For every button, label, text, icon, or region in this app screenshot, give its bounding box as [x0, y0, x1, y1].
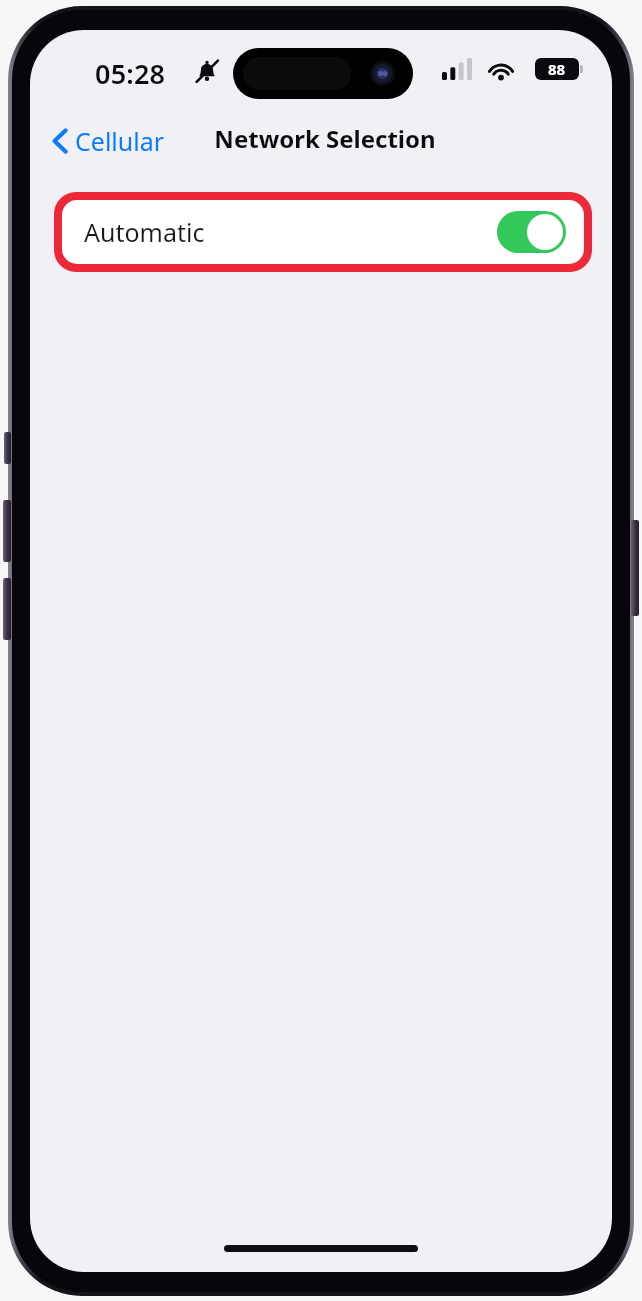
staticText: Network Selection: [214, 122, 436, 155]
staticText: 05:28: [95, 55, 166, 92]
staticText: Cellular: [75, 124, 165, 158]
button[interactable]: Automatic: [62, 200, 584, 264]
staticText: Automatic: [84, 215, 205, 249]
staticText: 88: [548, 59, 566, 79]
button[interactable]: Cellular: [44, 118, 173, 164]
button[interactable]: Automatic network selection, on: [497, 211, 566, 253]
